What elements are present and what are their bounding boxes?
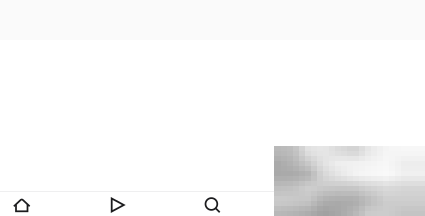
button[interactable]: Home [13,198,30,212]
button[interactable]: Play [111,197,125,213]
button[interactable]: Search [205,197,221,213]
